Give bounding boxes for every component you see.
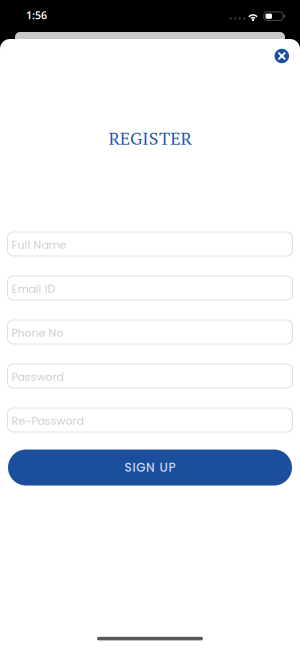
- staticText: 1:56: [26, 8, 47, 22]
- staticText: Re-Password: [11, 413, 83, 428]
- staticText: SIGN UP: [125, 459, 175, 476]
- button[interactable]: SIGN UP: [8, 449, 292, 485]
- staticText: Password: [11, 369, 63, 384]
- staticText: Email ID: [11, 281, 55, 296]
- staticText: Full Name: [11, 237, 66, 252]
- staticText: REGISTER: [108, 126, 192, 150]
- staticText: Phone No: [11, 325, 63, 340]
- button[interactable]: Close: [275, 49, 289, 63]
